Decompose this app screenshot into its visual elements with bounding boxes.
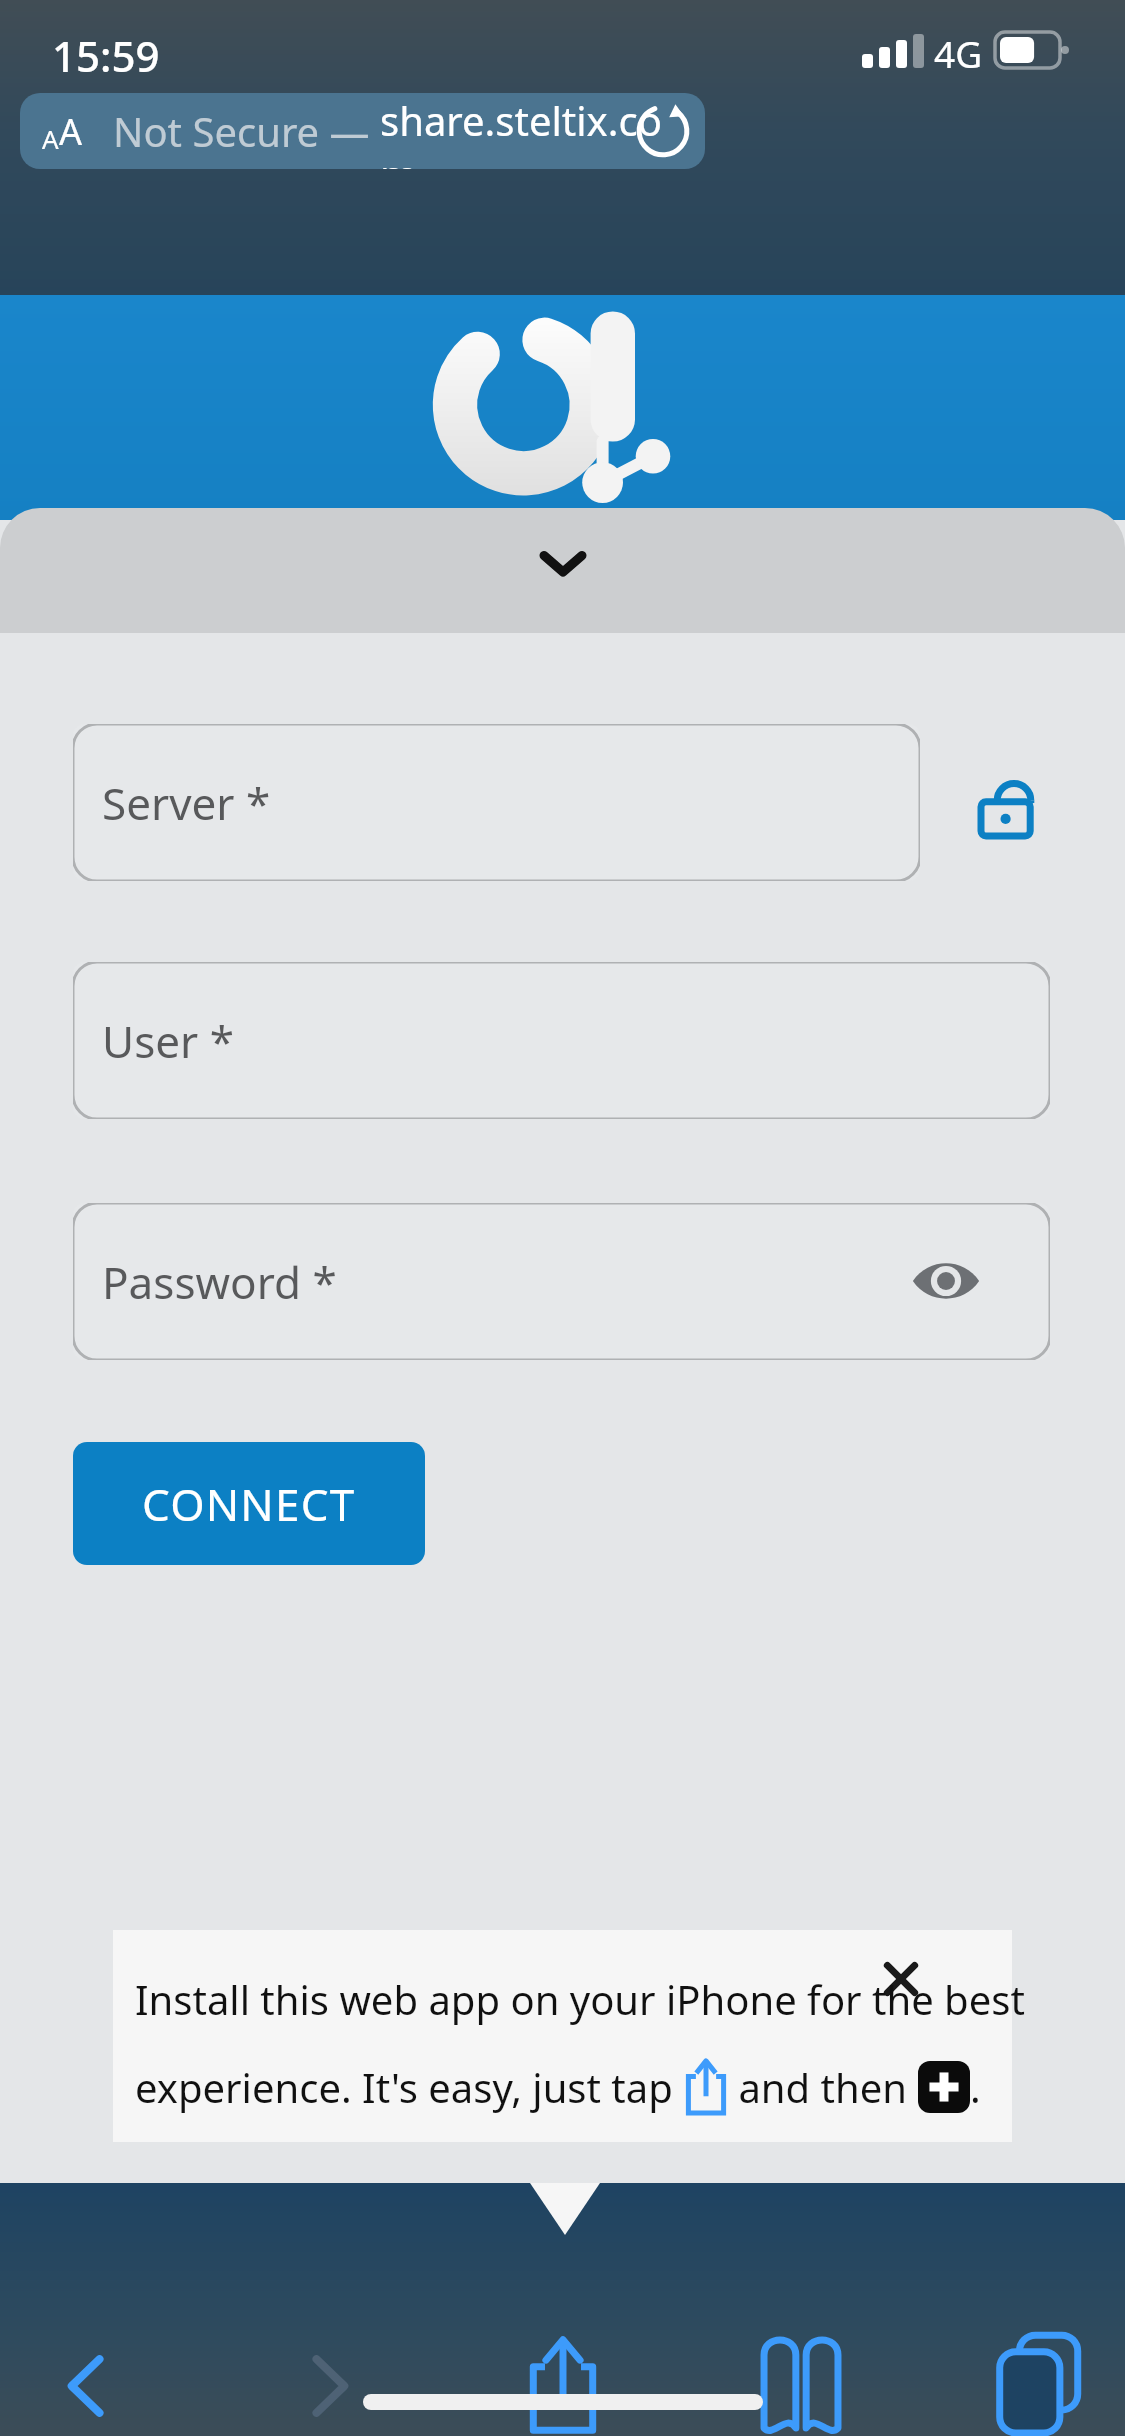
staticText: Install this web app on your iPhone for …: [135, 1972, 1025, 2026]
staticText: experience. It's easy, just tap: [135, 2060, 684, 2114]
staticText: 15:59: [52, 27, 160, 84]
button[interactable]: Close: [870, 1948, 932, 2010]
button[interactable]: User *: [73, 962, 1050, 1119]
staticText: CONNECT: [142, 1474, 356, 1534]
button[interactable]: Share: [518, 2331, 608, 2436]
button[interactable]: Show password: [910, 1253, 982, 1309]
staticText: share.steltix.com: [380, 93, 683, 169]
button[interactable]: Tabs: [995, 2331, 1089, 2435]
button[interactable]: Forward: [280, 2338, 376, 2434]
staticText: and then: [728, 2060, 918, 2114]
staticText: .: [970, 2060, 981, 2114]
staticText: Not Secure —: [113, 104, 380, 158]
staticText: Password *: [102, 1252, 337, 1312]
button[interactable]: Bookmarks: [758, 2333, 844, 2433]
staticText: A: [59, 107, 83, 156]
button[interactable]: A: [20, 93, 705, 169]
button[interactable]: Reload: [632, 100, 694, 162]
button[interactable]: Security: [978, 774, 1038, 840]
staticText: User *: [102, 1011, 234, 1071]
button[interactable]: Expand: [0, 508, 1125, 633]
button[interactable]: Password *: [73, 1203, 1050, 1360]
button[interactable]: Back: [40, 2338, 136, 2434]
staticText: 4G: [934, 28, 983, 72]
staticText: Server *: [102, 773, 271, 833]
staticText: A: [42, 121, 59, 156]
button[interactable]: CONNECT: [73, 1442, 425, 1565]
button[interactable]: Server *: [73, 724, 920, 881]
